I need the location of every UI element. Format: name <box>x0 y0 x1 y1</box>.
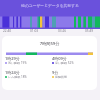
staticText: 05:49 <box>85 29 94 33</box>
button[interactable]: 他のユーザーとデータを共有する <box>0 0 100 29</box>
staticText: 覚醒状態 <box>55 75 67 79</box>
staticText: 9分 <box>52 70 59 75</box>
staticText: 4時09分 <box>52 56 67 61</box>
button[interactable]: 1時29分 <box>5 56 50 65</box>
staticText: 7時間59分 <box>2 41 97 47</box>
staticText: 03:26 <box>58 29 67 33</box>
staticText: 浅い睡眠 19% <box>8 61 27 65</box>
staticText: 22:40 <box>3 29 12 33</box>
button[interactable]: 9分 <box>52 70 97 79</box>
staticText: 1時29分 <box>5 56 20 61</box>
button[interactable]: 1時24分 <box>5 70 50 79</box>
staticText: レム睡眠 18% <box>8 75 27 79</box>
staticText: 1時24分 <box>5 70 20 75</box>
staticText: 01:03 <box>30 29 39 33</box>
staticText: 深い睡眠 52% <box>55 61 74 65</box>
button[interactable]: 4時09分 <box>52 56 97 65</box>
staticText: 他のユーザーとデータを共有する <box>0 3 100 8</box>
button[interactable]: 7時間59分 <box>2 36 97 90</box>
